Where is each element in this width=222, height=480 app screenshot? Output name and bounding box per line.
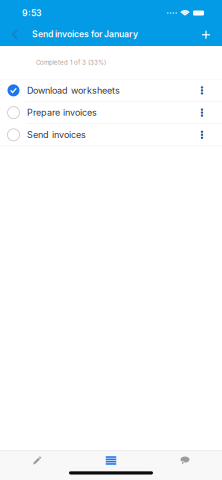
button[interactable]: Messages [148,450,222,471]
staticText: 9:53 [22,8,42,18]
staticText: Prepare invoices [27,107,97,118]
staticText: Send invoices for January [32,29,138,39]
button[interactable]: Compose [0,450,74,471]
button[interactable]: Tasks [74,450,148,471]
button[interactable]: Back [4,21,26,46]
button[interactable]: Add task [195,21,217,47]
button[interactable]: Prepare invoices [0,102,222,123]
button[interactable]: Send invoices [0,124,222,146]
staticText: Send invoices [27,129,86,140]
staticText: Completed 1 of 3 (33%) [36,59,106,66]
button[interactable]: Download worksheets [0,80,222,101]
staticText: Download worksheets [27,85,120,96]
